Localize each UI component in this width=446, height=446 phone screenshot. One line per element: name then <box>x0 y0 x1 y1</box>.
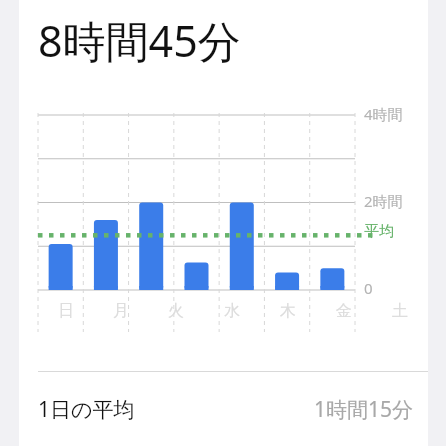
button[interactable]: 8時間45分 <box>19 0 428 86</box>
staticText: 月 <box>113 301 129 321</box>
staticText: 金 <box>336 301 352 321</box>
staticText: 平均 <box>364 222 394 241</box>
staticText: 2時間 <box>364 191 403 211</box>
staticText: 0 <box>364 278 373 298</box>
button[interactable]: 1日の平均 <box>19 372 428 446</box>
staticText: 水 <box>224 301 240 321</box>
staticText: 火 <box>168 301 184 321</box>
staticText: 木 <box>280 301 296 321</box>
button[interactable]: 週ごとの利用時間グラフ <box>19 86 428 336</box>
staticText: 4時間 <box>364 104 403 124</box>
staticText: 日 <box>58 301 74 321</box>
staticText: 8時間45分 <box>38 11 241 70</box>
staticText: 土 <box>392 301 408 321</box>
staticText: 1時間15分 <box>314 395 414 424</box>
staticText: 1日の平均 <box>38 395 135 424</box>
